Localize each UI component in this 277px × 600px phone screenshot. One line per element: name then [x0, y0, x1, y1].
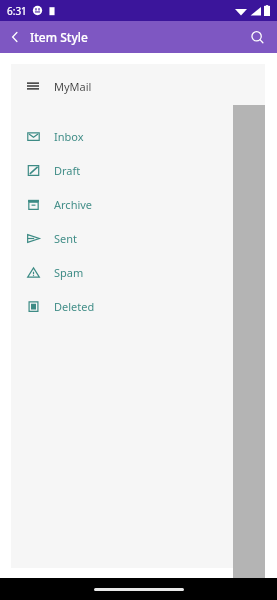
- staticText: Archive: [54, 197, 93, 212]
- button[interactable]: Sent: [11, 221, 265, 255]
- button[interactable]: Deleted: [11, 289, 265, 323]
- staticText: Inbox: [54, 129, 84, 144]
- staticText: Deleted: [54, 299, 95, 314]
- staticText: Spam: [54, 265, 84, 280]
- button[interactable]: Search: [242, 22, 272, 52]
- staticText: Draft: [54, 163, 81, 178]
- staticText: Item Style: [30, 29, 88, 45]
- button[interactable]: Archive: [11, 187, 265, 221]
- staticText: MyMail: [54, 79, 92, 94]
- staticText: Sent: [54, 231, 78, 246]
- button[interactable]: MyMail: [11, 64, 265, 108]
- staticText: 6:31: [7, 4, 27, 18]
- button[interactable]: Back: [0, 22, 30, 52]
- button[interactable]: Draft: [11, 153, 265, 187]
- button[interactable]: Inbox: [11, 119, 265, 153]
- button[interactable]: Spam: [11, 255, 265, 289]
